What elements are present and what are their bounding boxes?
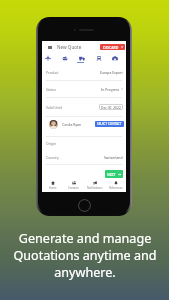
staticText: Cordia Ryan <box>62 122 82 127</box>
staticText: Europa Export <box>100 70 123 75</box>
staticText: Product <box>46 70 59 75</box>
button[interactable]: Warehouse <box>107 53 123 64</box>
staticText: Contacts <box>68 186 79 190</box>
button[interactable]: Notifications <box>84 178 105 192</box>
staticText: NEXT <box>107 172 116 177</box>
staticText: SELECT CONTACT <box>97 122 122 126</box>
button[interactable]: DISCARD <box>100 44 125 50</box>
button[interactable]: Product <box>42 64 126 81</box>
staticText: Dec 30, 2022 <box>101 105 121 109</box>
staticText: Country <box>46 155 59 160</box>
button[interactable]: Country <box>42 150 126 165</box>
button[interactable]: Home <box>42 178 63 192</box>
button[interactable]: NEXT <box>105 170 123 178</box>
button[interactable]: Contacts <box>63 178 84 192</box>
staticText: References <box>109 186 123 190</box>
button[interactable]: SELECT CONTACT <box>95 121 124 127</box>
staticText: Valid Until <box>46 105 63 110</box>
button[interactable]: Status <box>42 81 126 98</box>
staticText: Home <box>49 186 57 190</box>
staticText: Generate and manage Quotations anytime a… <box>9 230 161 281</box>
staticText: Switzerland <box>104 155 123 160</box>
button[interactable]: Menu <box>46 44 53 51</box>
staticText: New Quote <box>57 44 82 50</box>
button[interactable]: Cordia Ryan <box>49 117 124 131</box>
button[interactable]: References <box>105 178 126 192</box>
staticText: In Progress <box>101 87 120 92</box>
staticText: DISCARD <box>103 45 119 50</box>
staticText: Status <box>46 87 56 92</box>
button[interactable]: Valid Until <box>42 98 126 117</box>
button[interactable]: Rail freight <box>90 53 107 64</box>
button[interactable]: Sea freight <box>56 53 73 64</box>
button[interactable]: Road freight <box>73 53 90 64</box>
staticText: Origin <box>46 141 56 146</box>
staticText: Notifications <box>87 186 103 190</box>
button[interactable]: Air freight <box>39 53 56 64</box>
